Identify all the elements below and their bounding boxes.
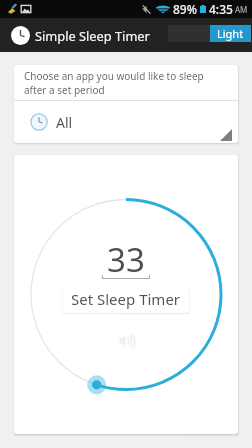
staticText: Simple Sleep Timer xyxy=(35,27,150,44)
button[interactable]: Light xyxy=(210,25,251,42)
other: Volume xyxy=(115,330,137,352)
button[interactable]: Set Sleep Timer xyxy=(63,285,189,313)
staticText: AM xyxy=(235,4,248,15)
button[interactable]: All xyxy=(14,101,238,143)
staticText: Choose an app you would like to sleep af… xyxy=(24,69,228,97)
staticText: Light xyxy=(217,26,244,41)
staticText: 89% xyxy=(173,1,197,17)
staticText: Set Sleep Timer xyxy=(71,289,181,309)
staticText: 4:35 xyxy=(209,1,233,17)
staticText: 33 xyxy=(107,237,145,282)
staticText: All xyxy=(56,113,73,132)
